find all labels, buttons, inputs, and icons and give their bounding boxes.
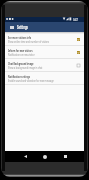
staticText: Notification settings — [8, 74, 30, 79]
button[interactable]: Toggle setting — [75, 49, 82, 56]
staticText: Show a background image in chat — [8, 66, 43, 70]
button[interactable]: Chat Background image — [5, 59, 84, 71]
button[interactable]: Toggle setting — [75, 36, 82, 43]
button[interactable]: Back — [19, 151, 31, 162]
staticText: Enable sound and vibration for new messa… — [8, 79, 54, 83]
button[interactable]: Toggle setting — [75, 62, 82, 69]
staticText: Inform for new visitors — [8, 48, 33, 53]
staticText: 3:47 — [73, 17, 78, 22]
button[interactable]: See more visitors info — [5, 33, 84, 45]
button[interactable]: Inform for new visitors — [5, 46, 84, 58]
staticText: Notification on new visitor — [8, 53, 35, 57]
staticText: Show online time and number of visitors — [8, 40, 50, 44]
staticText: Settings — [17, 24, 28, 30]
button[interactable]: Home — [39, 151, 51, 162]
button[interactable]: Recent apps — [59, 151, 71, 162]
staticText: See more visitors info — [8, 35, 31, 40]
button[interactable]: Open navigation drawer — [7, 22, 16, 32]
button[interactable]: Notification settings — [5, 72, 84, 84]
staticText: Chat Background image — [8, 61, 34, 66]
